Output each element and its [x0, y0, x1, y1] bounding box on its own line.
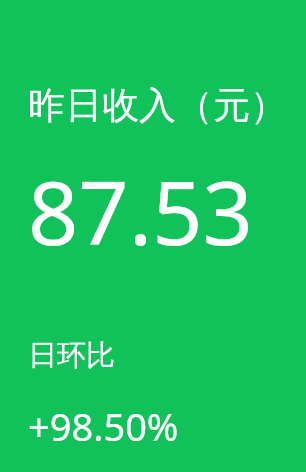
staticText: +98.50%	[28, 400, 294, 452]
staticText: 87.53	[28, 151, 294, 271]
staticText: 昨日收入（元）	[28, 82, 294, 129]
button[interactable]: 昨日收入（元）	[0, 0, 306, 472]
staticText: 日环比	[28, 337, 294, 374]
